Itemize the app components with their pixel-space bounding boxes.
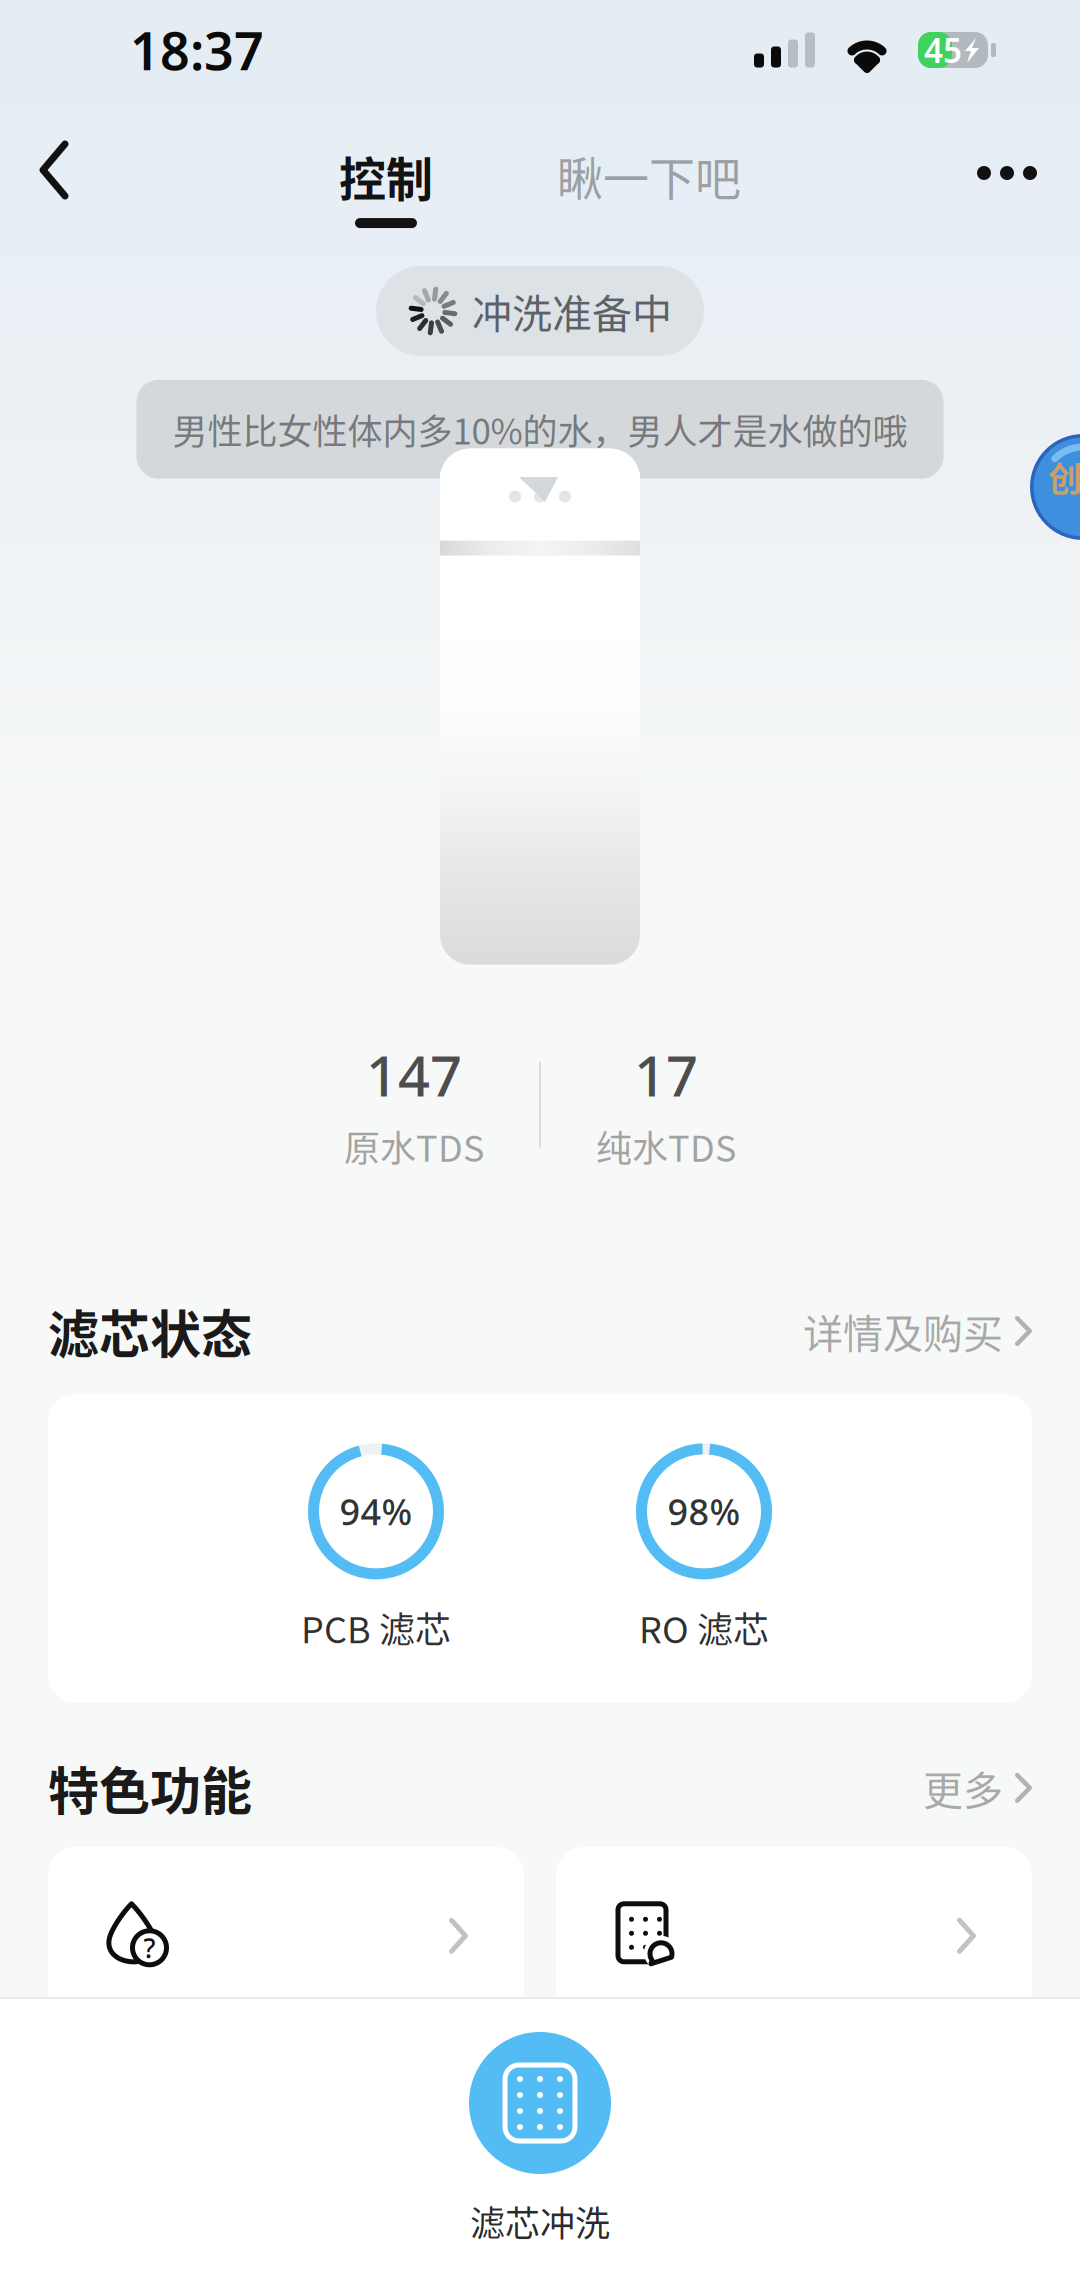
button[interactable] <box>556 1847 1032 2097</box>
button[interactable]: 更多 <box>923 1753 1032 1823</box>
button[interactable]: Activity <box>1030 434 1080 540</box>
staticText: 男性比女性体内多10%的水，男人才是水做的哦 <box>172 404 907 455</box>
staticText: 瞅一下吧 <box>557 142 741 209</box>
button[interactable]: More <box>941 128 1073 218</box>
staticText: 原水TDS <box>344 1120 484 1172</box>
staticText: PCB 滤芯 <box>301 1601 451 1653</box>
staticText: 控制 <box>339 142 433 210</box>
staticText: 94% <box>339 1487 412 1535</box>
staticText: 17 <box>634 1038 698 1112</box>
staticText: 98% <box>667 1487 740 1535</box>
button[interactable]: 控制 <box>313 130 459 240</box>
button[interactable]: ? <box>48 1847 524 2097</box>
button[interactable]: Back <box>0 122 104 218</box>
staticText: 滤芯状态 <box>48 1294 252 1368</box>
staticText: 冲洗准备中 <box>472 282 672 340</box>
button[interactable]: 滤芯冲洗 <box>0 1999 1080 2287</box>
button[interactable]: 详情及购买 <box>803 1296 1032 1366</box>
button[interactable]: 瞅一下吧 <box>537 130 761 239</box>
staticText: 45 <box>924 28 962 72</box>
staticText: 147 <box>366 1038 462 1112</box>
staticText: 纯水TDS <box>596 1120 736 1172</box>
staticText: 特色功能 <box>48 1751 252 1825</box>
staticText: RO 滤芯 <box>639 1601 769 1653</box>
staticText: 滤芯冲洗 <box>470 2196 610 2247</box>
staticText: ? <box>143 1930 155 1965</box>
staticText: 详情及购买 <box>803 1302 1003 1360</box>
button[interactable]: 冲洗准备中 <box>376 266 704 356</box>
staticText: 创 <box>1048 452 1080 502</box>
staticText: 18:37 <box>130 15 264 85</box>
staticText: 更多 <box>923 1759 1003 1817</box>
